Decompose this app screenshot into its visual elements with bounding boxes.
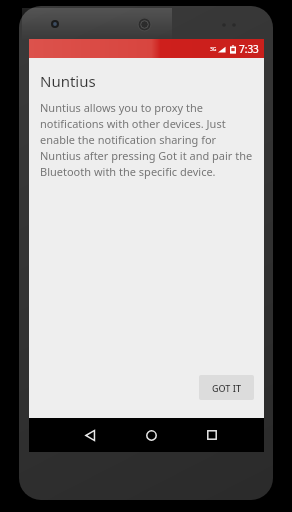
button[interactable]: Recent apps <box>197 420 227 450</box>
staticText: GOT IT <box>212 382 241 394</box>
staticText: 7:33 <box>239 42 259 56</box>
staticText: Nuntius <box>40 71 96 91</box>
staticText: Nuntius allows you to proxy the notifica… <box>40 100 253 179</box>
button[interactable]: GOT IT <box>199 375 254 400</box>
staticText: 3G <box>210 46 217 53</box>
button[interactable]: Back <box>75 420 105 450</box>
button[interactable]: Home <box>136 420 166 450</box>
